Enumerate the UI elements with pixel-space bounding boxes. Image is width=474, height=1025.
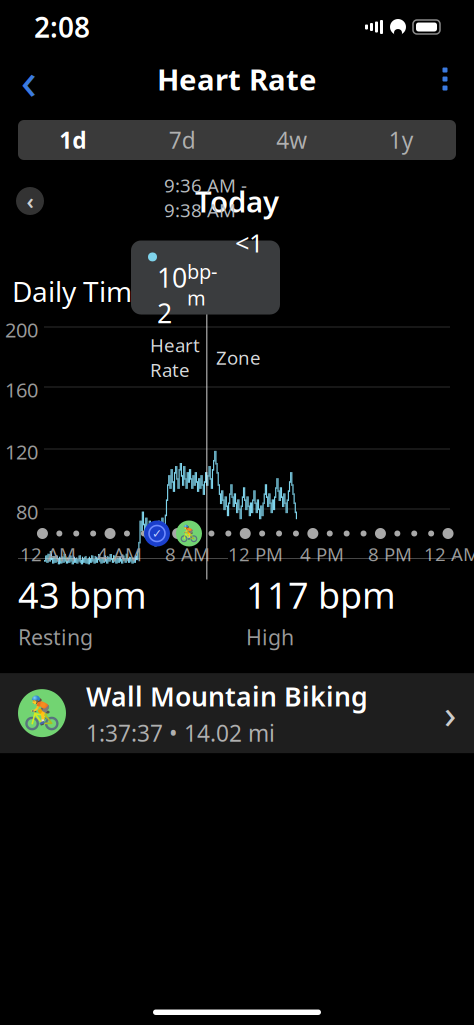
button[interactable]: More options (418, 55, 472, 103)
staticText: 1d (59, 125, 86, 155)
staticText: 12 PM (228, 541, 283, 566)
button[interactable]: 7d (127, 120, 237, 160)
staticText: 2:08 (34, 8, 90, 46)
staticText: bpm (187, 231, 217, 311)
button[interactable]: 4w (237, 120, 346, 160)
staticText: Today (195, 181, 279, 220)
staticText: ✓ (152, 527, 162, 540)
staticText: High (246, 623, 294, 651)
button[interactable]: 🚴 (0, 673, 474, 753)
staticText: ‹ (26, 187, 33, 215)
staticText: 🚴 (22, 695, 62, 731)
staticText: 43 bpm (18, 571, 147, 619)
staticText: Heart Rate (157, 59, 317, 98)
staticText: 4w (276, 125, 307, 155)
button[interactable]: Previous day (16, 187, 44, 215)
button[interactable]: Back (2, 55, 56, 103)
staticText: 117 bpm (246, 571, 396, 619)
staticText: › (444, 687, 456, 740)
staticText: Resting (18, 623, 93, 651)
staticText: ‹ (20, 44, 37, 114)
staticText: 🚴 (179, 524, 199, 543)
staticText: 80 (16, 498, 38, 525)
staticText: 160 (5, 376, 38, 403)
staticText: 7d (169, 125, 196, 155)
staticText: Wall Mountain Biking (86, 678, 368, 714)
staticText: 102 (157, 224, 187, 331)
staticText: Daily Timeline (12, 272, 195, 310)
staticText: 1:37:37 • 14.02 mi (86, 718, 275, 748)
staticText: Heart Rate (150, 333, 200, 382)
staticText: 4 PM (300, 541, 344, 566)
staticText: 8 PM (368, 541, 412, 566)
button[interactable]: 1y (346, 120, 456, 160)
staticText: 9:36 AM - 9:38 AM (164, 173, 247, 222)
staticText: 200 (5, 316, 38, 343)
staticText: 1y (389, 125, 414, 155)
staticText: 8 AM (165, 541, 210, 566)
staticText: Zone (216, 345, 261, 370)
staticText: 120 (5, 438, 38, 465)
staticText: 12 AM (20, 541, 76, 566)
button[interactable]: 1d (18, 120, 127, 160)
staticText: 4 AM (97, 541, 142, 566)
staticText: 12 AM (424, 541, 474, 566)
staticText: <1 (235, 226, 263, 259)
